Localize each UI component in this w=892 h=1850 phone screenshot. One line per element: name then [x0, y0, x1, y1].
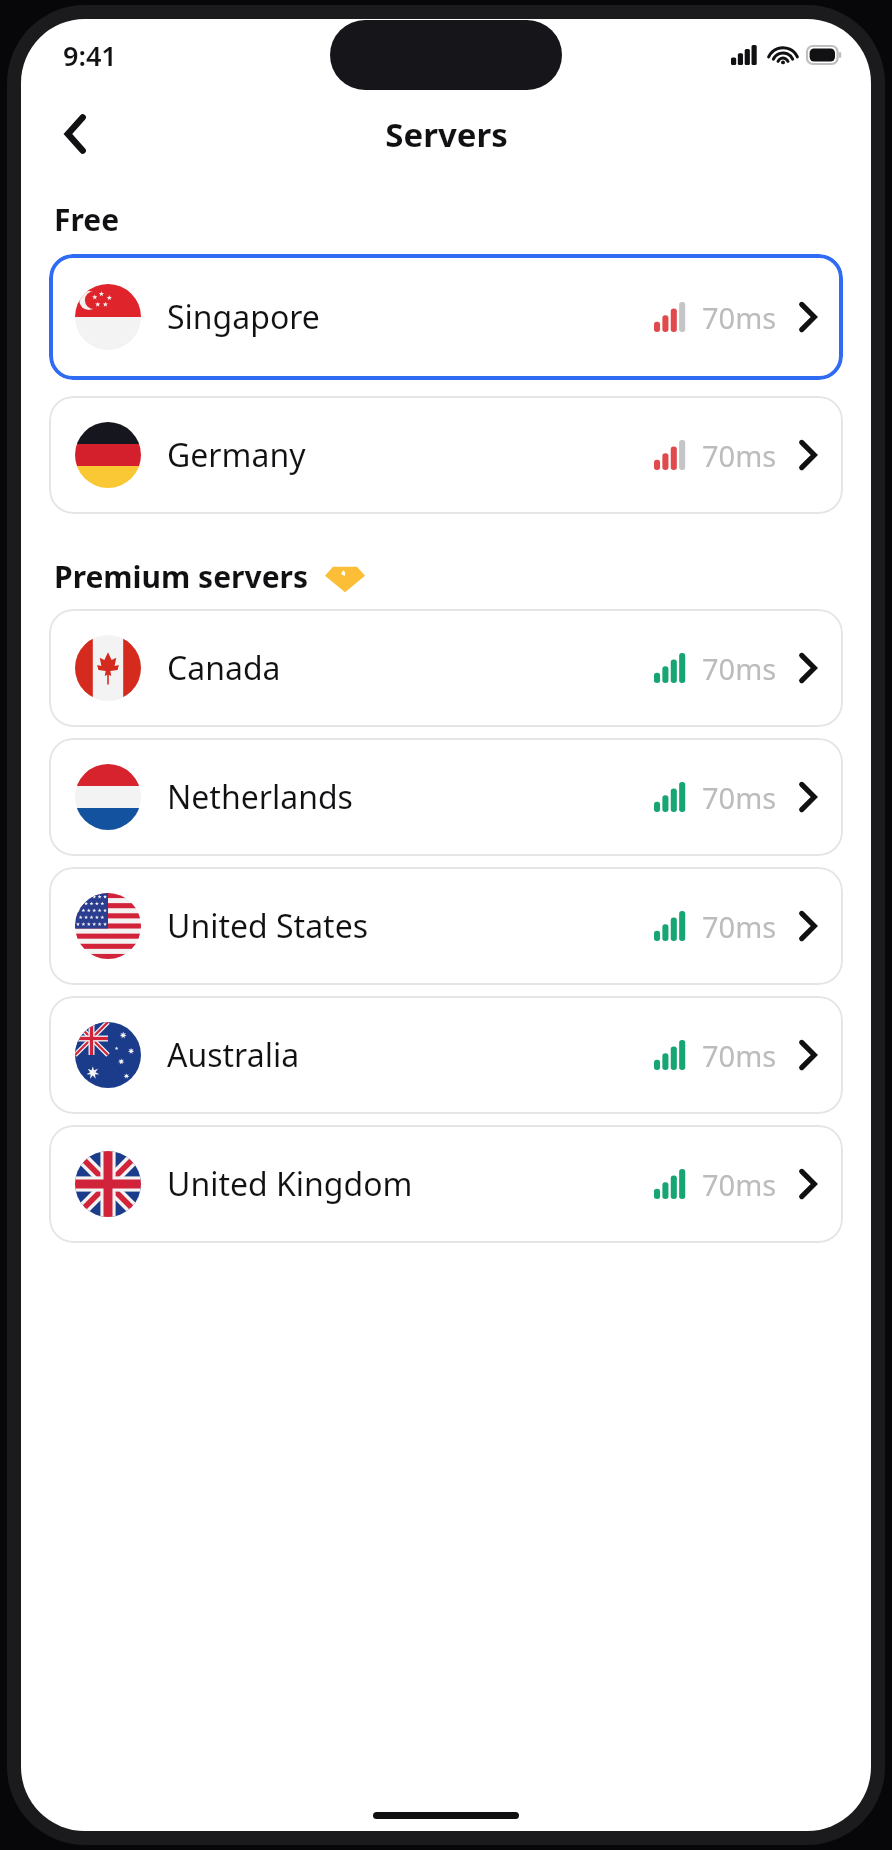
- staticText: 70ms: [702, 907, 777, 946]
- staticText: Germany: [167, 433, 306, 477]
- button[interactable]: Germany: [49, 396, 843, 514]
- staticText: 70ms: [702, 436, 777, 475]
- button[interactable]: Back: [47, 105, 105, 163]
- staticText: 70ms: [702, 778, 777, 817]
- staticText: Netherlands: [167, 775, 353, 819]
- button[interactable]: Australia: [49, 996, 843, 1114]
- button[interactable]: Canada: [49, 609, 843, 727]
- staticText: Free: [54, 199, 120, 240]
- button[interactable]: United States: [49, 867, 843, 985]
- staticText: United States: [167, 904, 369, 948]
- staticText: Servers: [385, 112, 508, 157]
- staticText: Premium servers: [54, 556, 309, 597]
- button[interactable]: Singapore: [49, 254, 843, 380]
- button[interactable]: United Kingdom: [49, 1125, 843, 1243]
- staticText: 70ms: [702, 649, 777, 688]
- staticText: Australia: [167, 1033, 300, 1077]
- staticText: 70ms: [702, 298, 777, 337]
- staticText: United Kingdom: [167, 1162, 413, 1206]
- staticText: 70ms: [702, 1165, 777, 1204]
- staticText: 70ms: [702, 1036, 777, 1075]
- button[interactable]: Netherlands: [49, 738, 843, 856]
- staticText: 9:41: [63, 37, 117, 74]
- staticText: Singapore: [167, 295, 320, 339]
- staticText: Canada: [167, 646, 281, 690]
